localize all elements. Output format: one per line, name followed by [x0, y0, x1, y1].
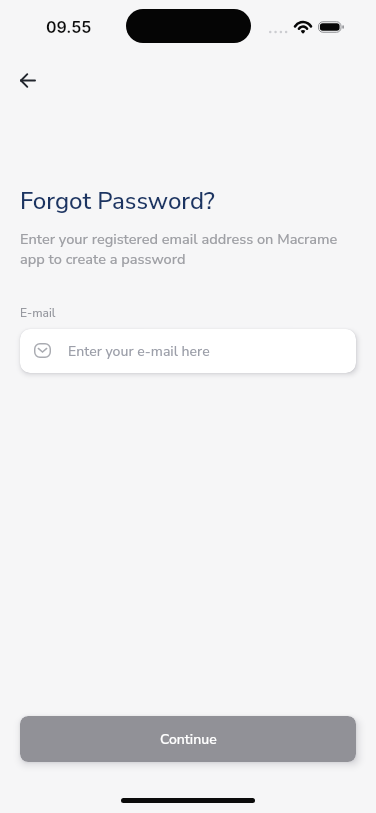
- button[interactable]: Back: [5, 58, 50, 103]
- staticText: Enter your e-mail here: [68, 342, 210, 361]
- staticText: 09.55: [46, 19, 92, 36]
- staticText: Forgot Password?: [20, 187, 215, 217]
- staticText: Enter your registered email address on M…: [20, 229, 340, 269]
- button[interactable]: Continue: [20, 716, 356, 762]
- staticText: E-mail: [20, 306, 56, 321]
- staticText: Continue: [160, 730, 217, 749]
- button[interactable]: Enter your e-mail here: [20, 329, 356, 373]
